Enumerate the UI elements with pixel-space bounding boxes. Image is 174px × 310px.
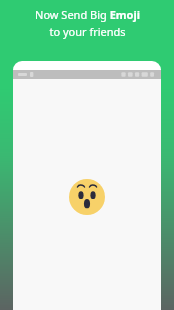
staticText: to your friends — [49, 24, 126, 39]
button[interactable]: Astonished face emoji — [69, 179, 105, 215]
staticText: Now Send Big Emoji — [35, 7, 140, 22]
